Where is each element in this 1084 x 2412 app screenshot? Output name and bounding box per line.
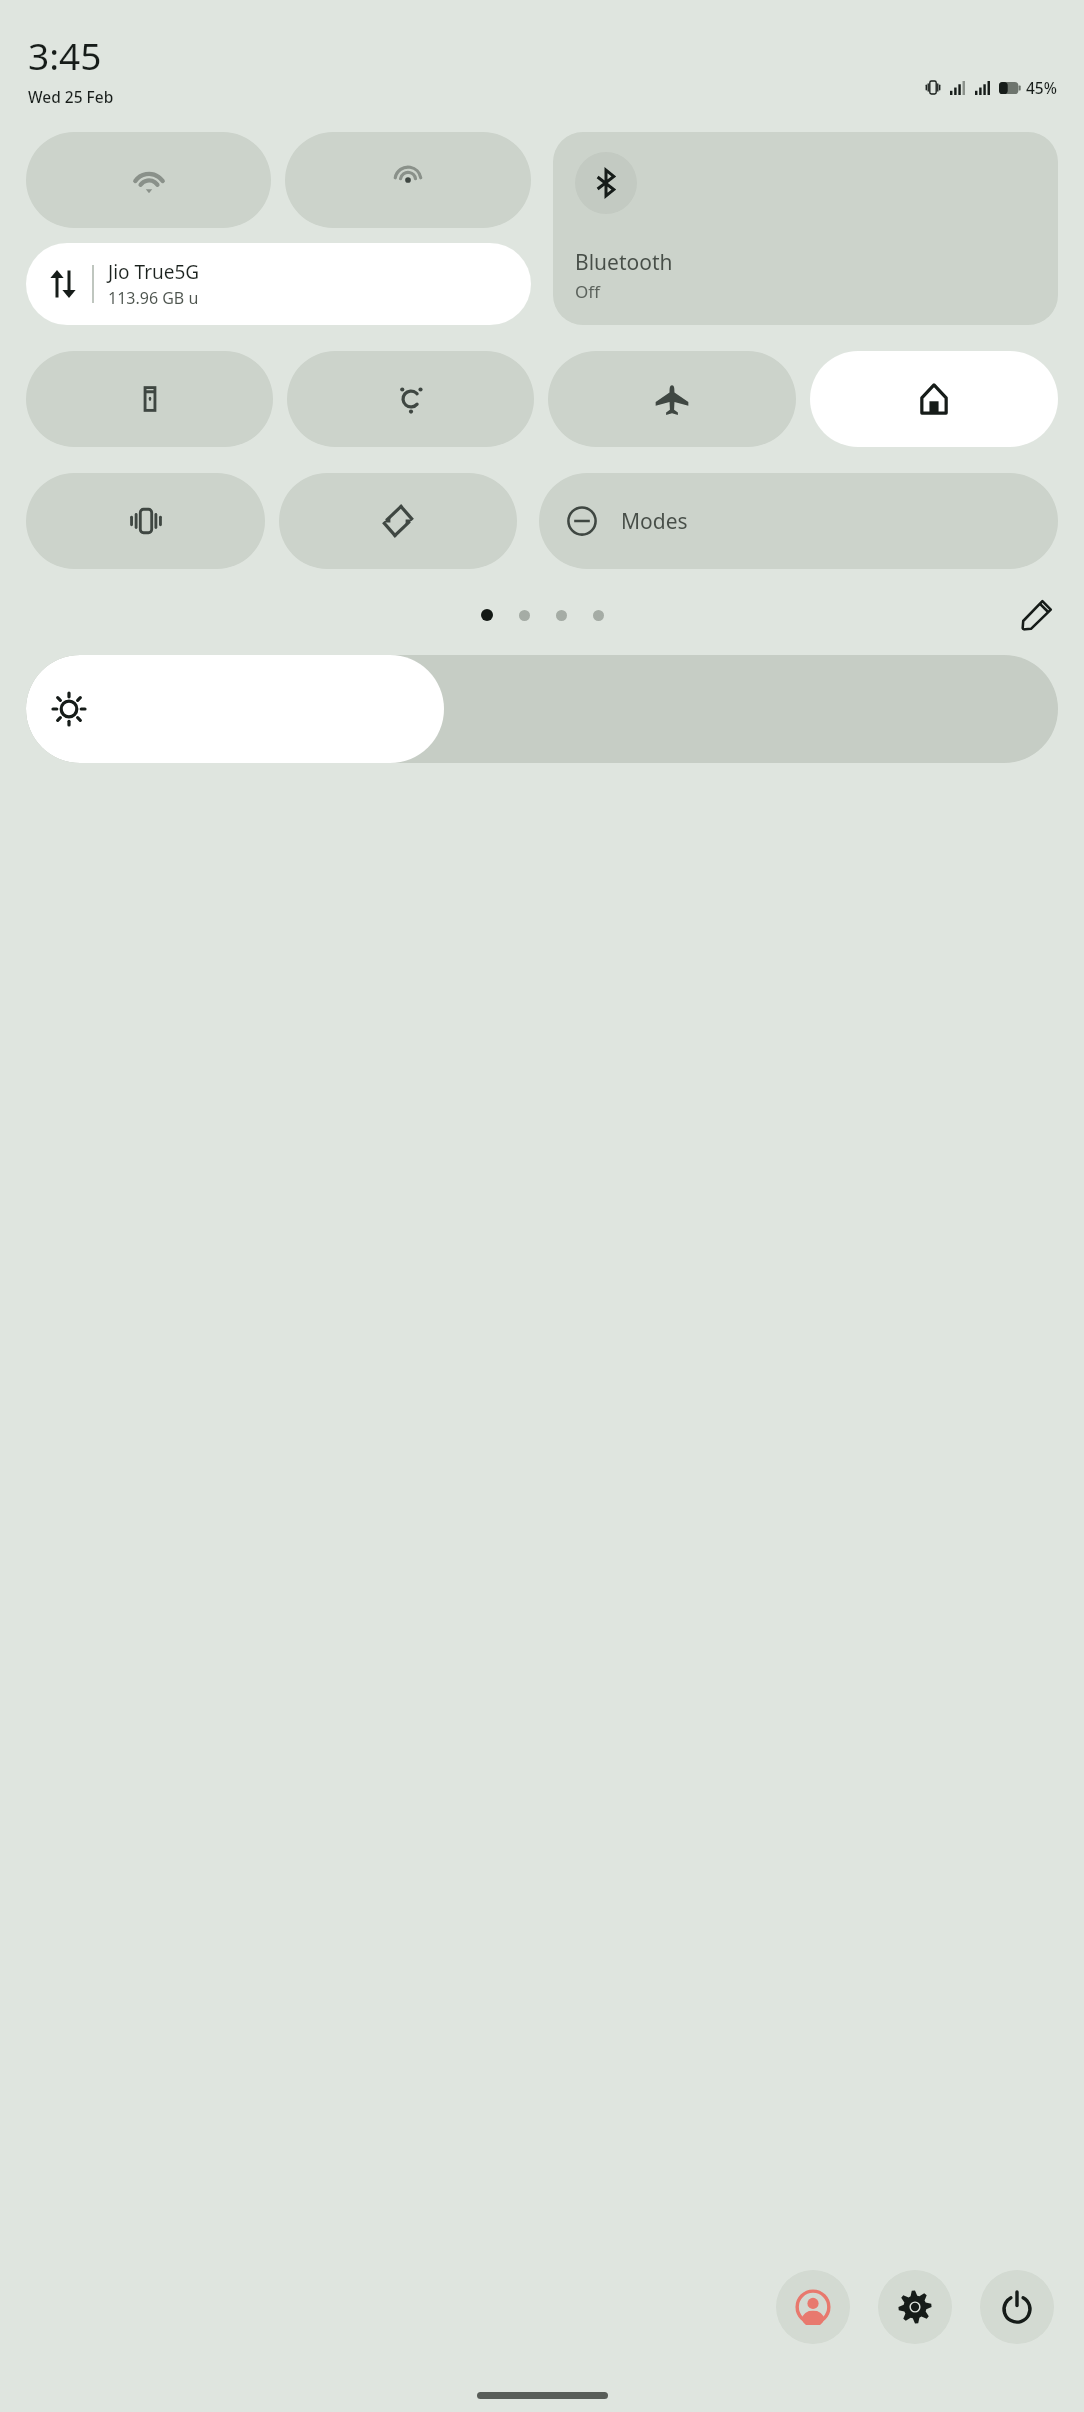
button[interactable]: Flashlight: [26, 351, 273, 447]
button[interactable]: Edit tiles: [1016, 595, 1058, 635]
button[interactable]: Account: [776, 2270, 850, 2344]
button[interactable]: Auto-rotate: [279, 473, 517, 569]
staticText: 113.96 GB u: [108, 287, 199, 309]
button[interactable]: Jio True5G: [26, 243, 531, 325]
staticText: Bluetooth: [575, 248, 673, 277]
staticText: Jio True5G: [108, 259, 200, 285]
button[interactable]: Circle to Search: [287, 351, 534, 447]
button[interactable]: Bluetooth: [553, 132, 1058, 325]
button[interactable]: Home: [810, 351, 1058, 447]
button[interactable]: Wi-Fi: [26, 132, 271, 228]
button[interactable]: Vibrate: [26, 473, 265, 569]
button[interactable]: Settings: [878, 2270, 952, 2344]
button[interactable]: Hotspot: [285, 132, 531, 228]
staticText: 45%: [1026, 77, 1057, 98]
button[interactable]: Modes: [539, 473, 1058, 569]
staticText: Off: [575, 280, 600, 303]
button[interactable]: Brightness: [26, 655, 1058, 763]
button[interactable]: Power: [980, 2270, 1054, 2344]
button[interactable]: Airplane mode: [548, 351, 796, 447]
staticText: Modes: [621, 507, 688, 536]
staticText: 3:45: [28, 30, 102, 80]
staticText: Wed 25 Feb: [28, 86, 114, 107]
